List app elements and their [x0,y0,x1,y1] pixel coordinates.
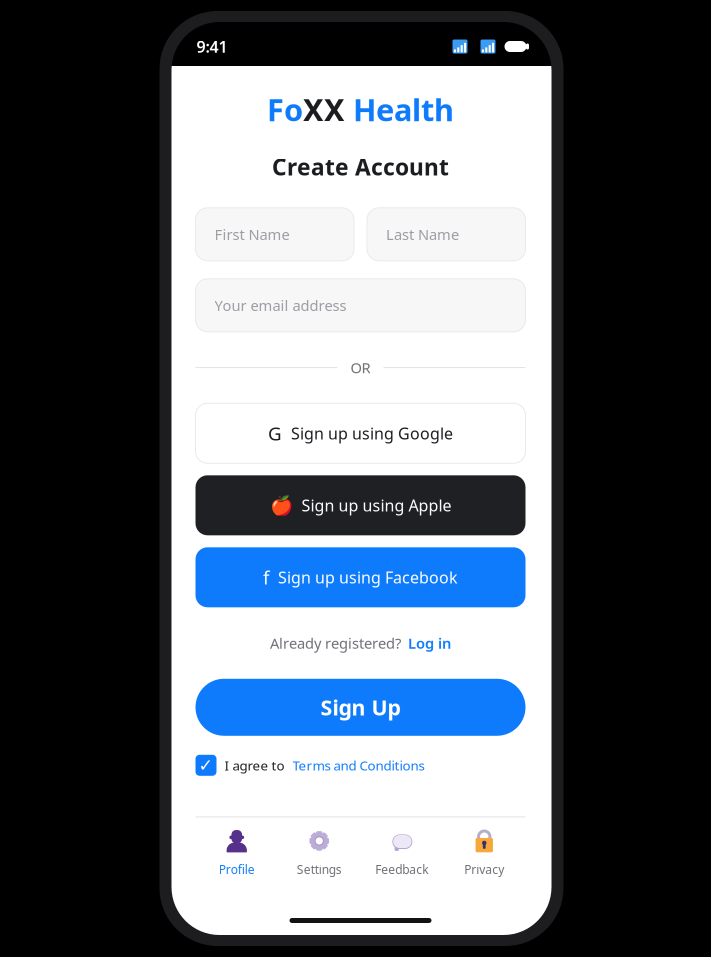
staticText: Sign up using Facebook [278,567,458,588]
staticText: Already registered? [270,633,401,653]
staticText: First Name [214,225,289,244]
staticText: I agree to [224,756,284,774]
button[interactable]: I agree to Terms and Conditions [195,755,216,776]
staticText: Terms and Conditions [292,756,424,774]
staticText: Sign up using Google [291,423,453,444]
staticText: Your email address [214,296,346,315]
staticText: 9:41 [196,36,227,57]
staticText: Last Name [386,225,459,244]
staticText: Fo [267,89,303,130]
button[interactable]: f [195,547,525,607]
button[interactable]: Terms and Conditions [292,756,424,774]
staticText: Sign Up [320,693,400,721]
staticText: Health [345,89,454,130]
staticText: Privacy [464,861,504,877]
staticText: XX [303,89,345,130]
button[interactable]: Log in [408,633,451,653]
button[interactable]: Settings [278,829,360,877]
staticText: 🍎 [269,495,292,516]
staticText: f [263,565,269,590]
staticText: ✓ [198,755,213,775]
staticText: G [268,421,282,446]
button[interactable]: Feedback [360,829,443,877]
button[interactable]: Profile [195,829,278,877]
staticText: Sign up using Apple [301,495,451,516]
staticText: Log in [408,633,451,653]
staticText: Feedback [375,861,428,877]
button[interactable]: G [195,403,525,463]
staticText: Create Account [272,152,449,182]
staticText: Settings [297,861,342,877]
button[interactable]: 🍎 [195,475,525,535]
staticText: OR [350,358,370,377]
button[interactable]: Privacy [443,829,525,877]
staticText: Profile [219,861,255,877]
button[interactable]: Sign Up [195,679,525,736]
